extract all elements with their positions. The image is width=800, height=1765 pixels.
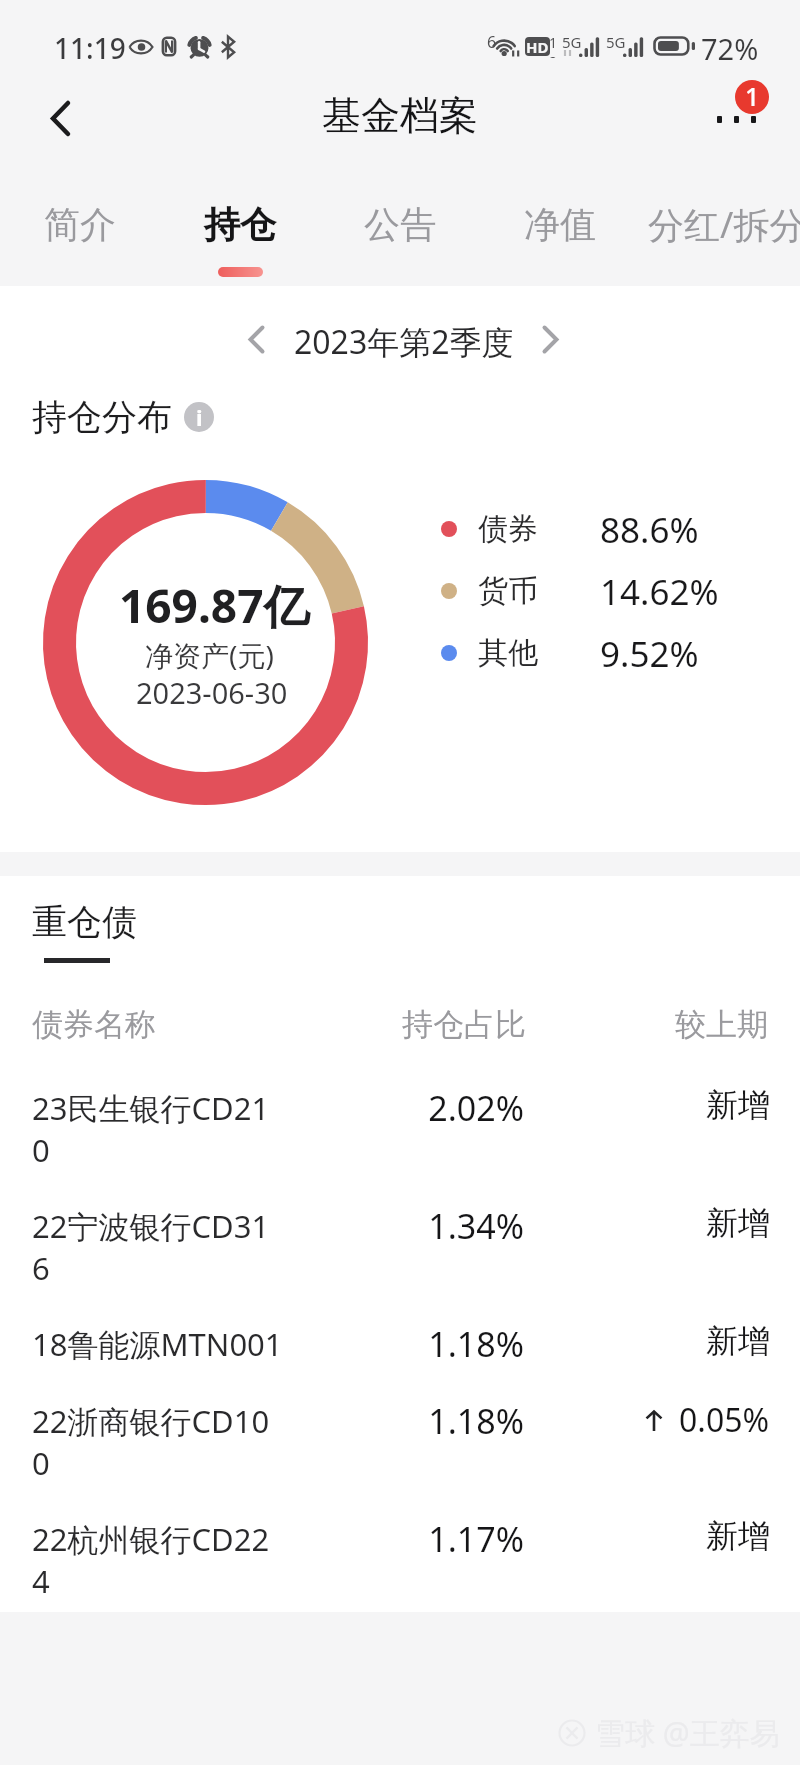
button[interactable]: 其他 [441,630,741,676]
staticText: 分红/拆分 [648,200,800,249]
staticText: 88.6% [600,506,699,552]
staticText: 1.18% [330,1321,524,1367]
staticText: 2023年第2季度 [294,320,514,364]
staticText: 货币 [478,572,600,610]
staticText: 0.05% [679,1398,770,1442]
button[interactable]: 18鲁能源MTN001 [0,1298,800,1375]
staticText: 基金档案 [322,91,478,140]
staticText: 新增 [706,1203,770,1243]
staticText: 22杭州银行CD22 [32,1518,270,1560]
staticText: 2023-06-30 [136,673,288,712]
button[interactable]: 持仓 [160,172,320,272]
staticText: 9.52% [600,630,699,676]
button[interactable]: 22浙商银行CD10 [0,1375,800,1493]
button[interactable]: 22杭州银行CD22 [0,1493,800,1611]
staticText: 1.17% [330,1516,524,1562]
button[interactable]: 简介 [0,172,160,272]
button[interactable]: 23民生银行CD21 [0,1062,800,1180]
staticText: 0 [32,1129,50,1171]
staticText: 持仓分布 [32,395,172,439]
staticText: 6 [487,31,497,53]
staticText: 5G [562,32,582,52]
staticText: 11:19 [54,29,126,67]
staticText: 2.02% [330,1085,524,1131]
button[interactable]: Asset allocation donut chart [43,480,368,805]
staticText: 持仓占比 [402,1005,526,1044]
staticText: 其他 [478,634,600,672]
button[interactable]: 公告 [320,172,480,272]
staticText: 持仓 [204,202,276,247]
staticText: 债券名称 [32,1005,156,1044]
staticText: 2 [549,52,558,58]
staticText: 净值 [524,202,596,247]
button[interactable]: 货币 [441,568,741,614]
button[interactable]: Info [184,402,214,432]
staticText: 1 [745,80,760,113]
button[interactable]: 债券 [441,506,741,552]
staticText: 14.62% [600,568,719,614]
staticText: 新增 [706,1321,770,1361]
staticText: i [196,402,203,432]
button[interactable]: Back [14,88,106,172]
staticText: 72% [701,29,759,68]
button[interactable]: 22宁波银行CD31 [0,1180,800,1298]
staticText: 18鲁能源MTN001 [32,1323,283,1365]
staticText: 169.87亿 [119,574,310,637]
button[interactable]: More options [690,88,782,172]
staticText: 1.34% [330,1203,524,1249]
button[interactable]: Next quarter [522,311,578,367]
button[interactable]: 净值 [480,172,640,272]
staticText: 6 [32,1247,50,1289]
staticText: 简介 [44,202,116,247]
staticText: 净资产(元) [145,636,274,674]
staticText: 新增 [706,1516,770,1556]
staticText: 4 [32,1560,50,1602]
button[interactable]: 分红/拆分 [647,172,800,272]
button[interactable]: Previous quarter [228,311,284,367]
staticText: 22浙商银行CD10 [32,1400,270,1442]
staticText: 22宁波银行CD31 [32,1205,270,1247]
staticText: 1 [549,33,558,52]
staticText: 债券 [478,510,600,548]
staticText: 公告 [364,202,436,247]
staticText: 较上期 [675,1005,768,1044]
staticText: 0 [32,1442,50,1484]
staticText: HD [526,37,549,56]
staticText: 新增 [706,1085,770,1125]
staticText: 5G [606,32,626,52]
staticText: 23民生银行CD21 [32,1087,270,1129]
staticText: 1.18% [330,1398,524,1444]
staticText: 雪球 @王弈易 [595,1712,780,1753]
staticText: 重仓债 [32,900,137,944]
